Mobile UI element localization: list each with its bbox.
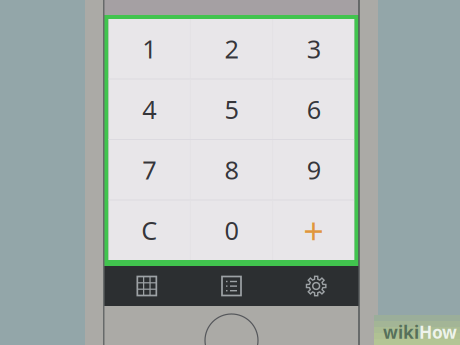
staticText: C	[141, 213, 157, 247]
staticText: 0	[224, 213, 238, 247]
button[interactable]: History	[189, 266, 274, 306]
staticText: 9	[307, 153, 321, 186]
staticText: 2	[224, 32, 238, 65]
staticText: 4	[142, 92, 156, 126]
button[interactable]: 5	[191, 79, 272, 139]
staticText: 7	[142, 153, 156, 186]
staticText: 8	[224, 153, 238, 186]
staticText: 5	[224, 92, 238, 126]
button[interactable]: 6	[273, 79, 354, 139]
button[interactable]: Keypad	[104, 266, 189, 306]
staticText: 1	[142, 32, 156, 65]
button[interactable]: 1	[108, 19, 190, 78]
button[interactable]: 3	[273, 19, 354, 78]
button[interactable]: Settings	[274, 266, 358, 306]
button[interactable]: C	[108, 200, 190, 260]
staticText: +	[303, 206, 324, 254]
staticText: 6	[307, 92, 321, 126]
button[interactable]: 2	[191, 19, 272, 78]
button[interactable]: 0	[191, 200, 272, 260]
button[interactable]: 8	[191, 140, 272, 199]
staticText: How	[419, 320, 457, 343]
button[interactable]: 4	[108, 79, 190, 139]
button[interactable]: 9	[273, 140, 354, 199]
button[interactable]: 7	[108, 140, 190, 199]
staticText: 3	[307, 32, 321, 65]
button[interactable]: +	[273, 200, 354, 260]
staticText: wiki	[383, 320, 419, 343]
